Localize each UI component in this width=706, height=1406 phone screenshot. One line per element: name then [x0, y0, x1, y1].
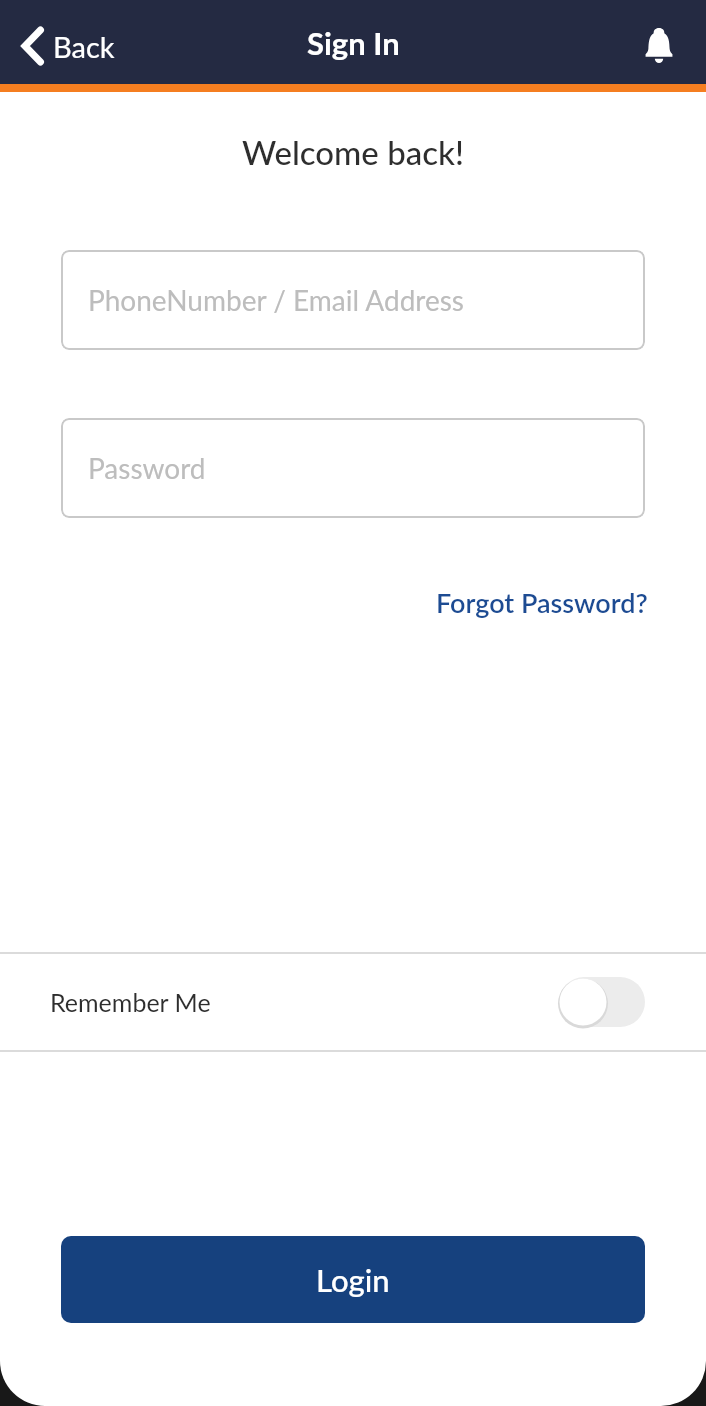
button[interactable]: Forgot Password?	[436, 586, 648, 618]
staticText: Remember Me	[50, 987, 211, 1017]
staticText: Password	[88, 451, 206, 485]
staticText: PhoneNumber / Email Address	[88, 283, 464, 317]
button[interactable]: Remember Me	[0, 954, 706, 1050]
button[interactable]: Login	[61, 1236, 645, 1323]
button[interactable]	[645, 28, 673, 63]
button[interactable]: Back	[0, 26, 115, 66]
staticText: Back	[53, 29, 115, 64]
staticText: Login	[316, 1261, 390, 1298]
button[interactable]	[558, 977, 645, 1027]
button[interactable]: PhoneNumber / Email Address	[61, 250, 645, 350]
button[interactable]: Password	[61, 418, 645, 518]
staticText: Sign In	[307, 24, 400, 61]
staticText: Welcome back!	[0, 132, 706, 172]
